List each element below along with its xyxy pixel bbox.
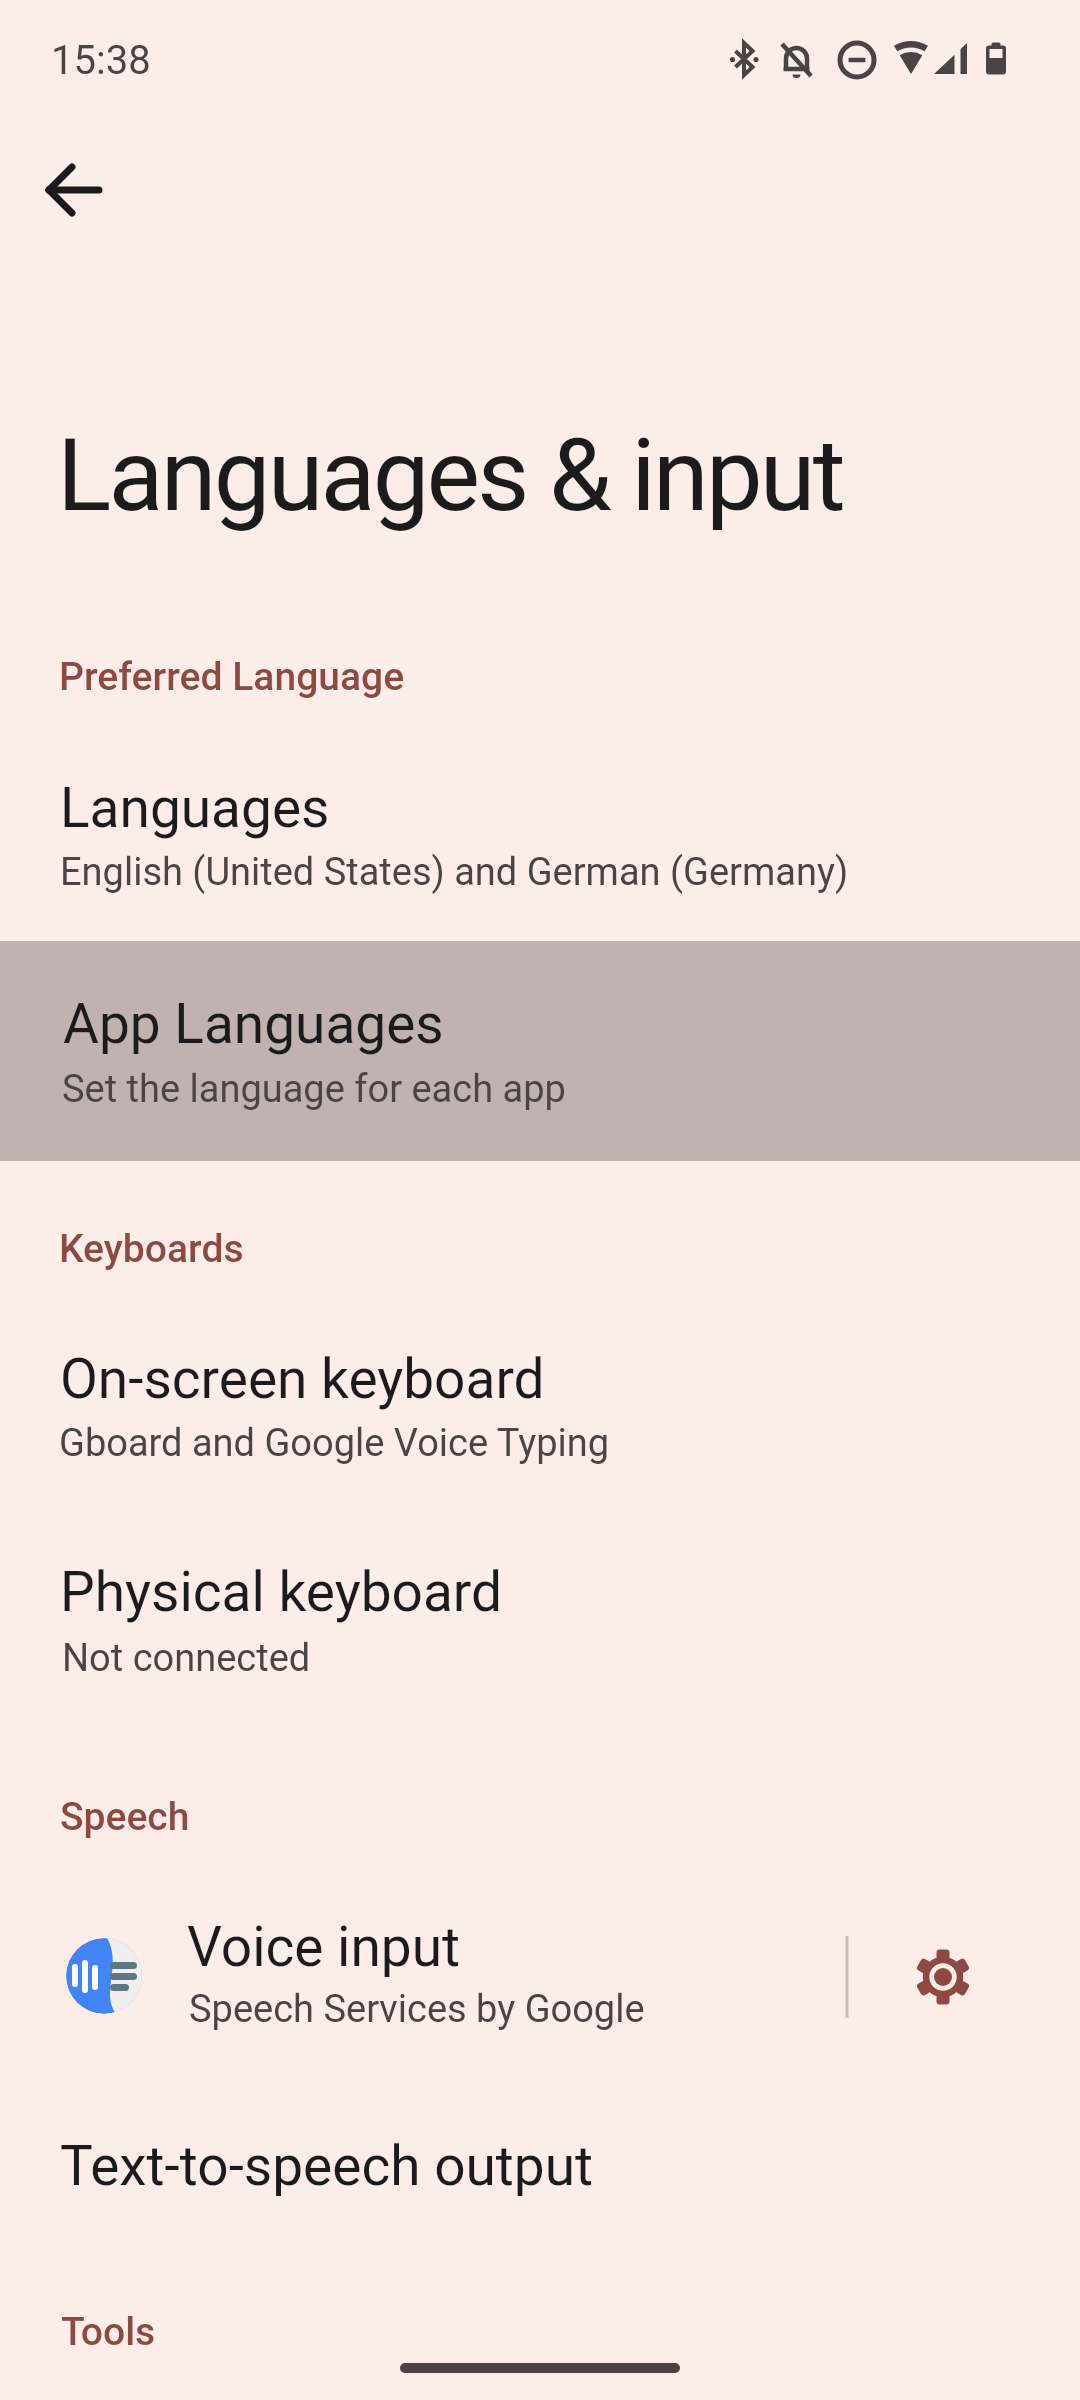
- staticText: Not connected: [62, 1636, 311, 1681]
- staticText: Physical keyboard: [60, 1560, 502, 1624]
- staticText: Speech: [60, 1794, 190, 1840]
- staticText: Text-to-speech output: [60, 2134, 594, 2198]
- button[interactable]: [0, 941, 1080, 1161]
- staticText: Tools: [61, 2309, 156, 2355]
- staticText: Preferred Language: [59, 654, 405, 700]
- button[interactable]: [30, 146, 118, 234]
- staticText: Languages: [60, 776, 330, 840]
- staticText: Speech Services by Google: [189, 1987, 645, 2032]
- staticText: 15:38: [51, 37, 151, 84]
- button[interactable]: [0, 721, 1080, 941]
- button[interactable]: [895, 1929, 991, 2025]
- staticText: App Languages: [63, 992, 444, 1056]
- staticText: Keyboards: [59, 1226, 244, 1272]
- staticText: Gboard and Google Voice Typing: [59, 1421, 610, 1466]
- staticText: On-screen keyboard: [60, 1347, 545, 1411]
- staticText: Set the language for each app: [62, 1067, 566, 1112]
- staticText: English (United States) and German (Germ…: [60, 850, 849, 895]
- button[interactable]: [0, 1294, 1080, 1514]
- staticText: Voice input: [187, 1915, 461, 1979]
- button[interactable]: [0, 1866, 820, 2086]
- staticText: Languages & input: [57, 416, 843, 534]
- button[interactable]: [0, 1510, 1080, 1730]
- button[interactable]: [0, 2078, 1080, 2298]
